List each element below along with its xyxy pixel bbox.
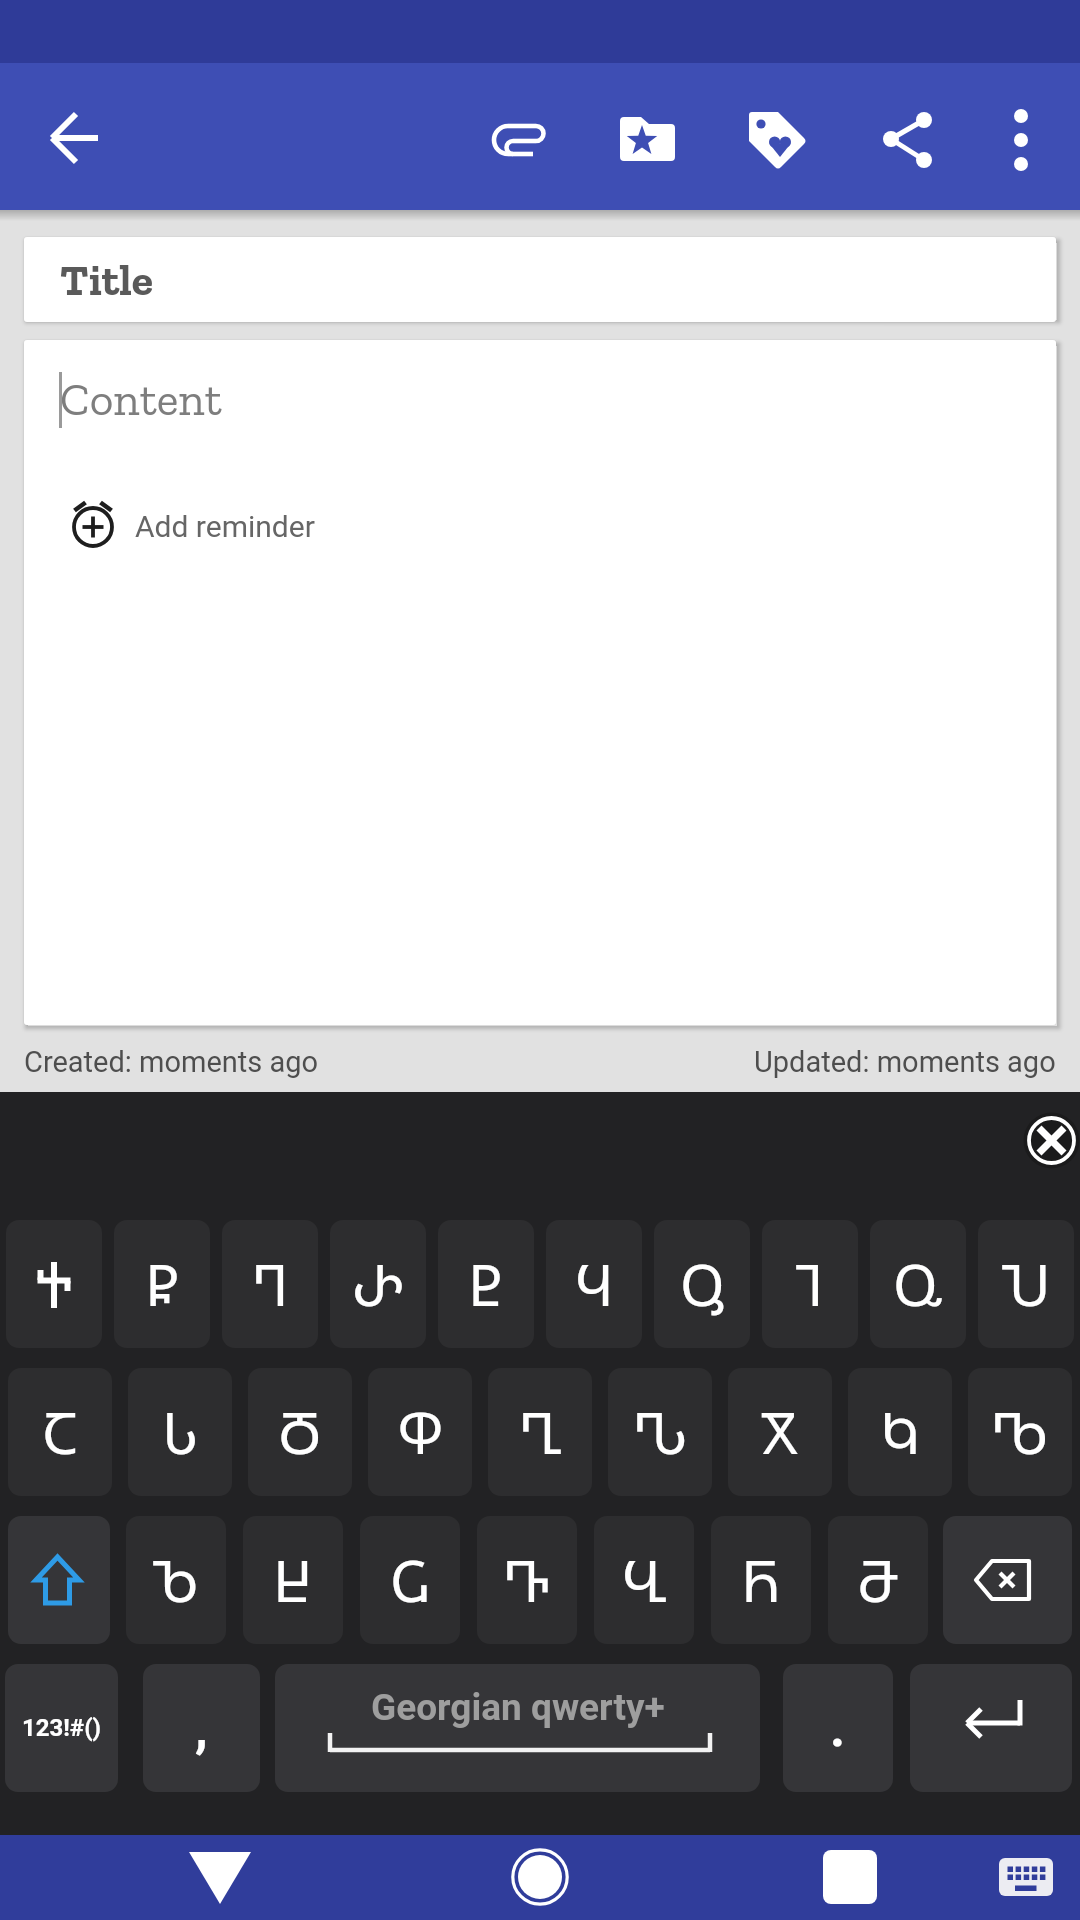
staticText: , (195, 1698, 208, 1759)
staticText: Ⴂ (519, 1393, 562, 1471)
staticText: Ⴁ (622, 1541, 667, 1619)
button[interactable] (480, 1838, 600, 1918)
button[interactable] (987, 106, 1055, 174)
button[interactable] (160, 1838, 280, 1918)
button[interactable]: Ⴃ (248, 1368, 352, 1496)
button[interactable]: Ⴓ (654, 1220, 750, 1348)
staticText: Content (60, 372, 222, 427)
staticText: Ⴚ (390, 1541, 431, 1619)
button[interactable]: Ⴎ (978, 1220, 1074, 1348)
staticText: Ⴒ (468, 1245, 504, 1323)
button[interactable]: Ⴌ (711, 1516, 811, 1644)
button[interactable]: Georgian qwerty+ (275, 1664, 760, 1792)
button[interactable] (745, 106, 813, 174)
button[interactable]: Ⴅ (477, 1516, 577, 1644)
button[interactable]: Ⴈ (762, 1220, 858, 1348)
button[interactable] (910, 1664, 1072, 1792)
button[interactable]: Ⴚ (360, 1516, 460, 1644)
staticText: Ⴐ (352, 1245, 405, 1323)
button[interactable]: Ⴠ (608, 1368, 712, 1496)
button[interactable]: Ⴒ (438, 1220, 534, 1348)
button[interactable] (8, 1516, 110, 1644)
button[interactable]: Content (24, 340, 1056, 1025)
button[interactable]: Ⴁ (594, 1516, 694, 1644)
staticText: Ⴎ (1002, 1245, 1051, 1323)
button[interactable]: Ⴞ (243, 1516, 343, 1644)
button[interactable] (6, 1220, 102, 1348)
button[interactable]: Ⴜ (114, 1220, 210, 1348)
staticText: Georgian qwerty+ (371, 1686, 665, 1729)
button[interactable]: Ⴑ (128, 1368, 232, 1496)
button[interactable] (790, 1838, 910, 1918)
button[interactable]: Ⴗ (546, 1220, 642, 1348)
button[interactable]: . (783, 1664, 893, 1792)
staticText: Ⴞ (273, 1541, 313, 1619)
button[interactable]: Ⴀ (8, 1368, 112, 1496)
staticText: 123!#() (22, 1714, 102, 1742)
staticText: Ⴉ (880, 1393, 921, 1471)
button[interactable]: , (143, 1664, 260, 1792)
button[interactable]: Ⴂ (488, 1368, 592, 1496)
button[interactable]: Add reminder (50, 495, 410, 559)
button[interactable]: Ⴍ (870, 1220, 966, 1348)
button[interactable] (874, 106, 942, 174)
staticText: Updated: moments ago (754, 1045, 1056, 1079)
staticText: Ⴍ (893, 1245, 943, 1323)
staticText: Created: moments ago (24, 1045, 319, 1079)
staticText: Ⴓ (680, 1245, 725, 1323)
button[interactable]: Ⴄ (222, 1220, 318, 1348)
button[interactable]: 123!#() (5, 1664, 118, 1792)
button[interactable] (612, 106, 680, 174)
button[interactable]: Ⴊ (968, 1368, 1072, 1496)
button[interactable] (975, 1838, 1080, 1918)
staticText: Ⴀ (42, 1393, 78, 1471)
staticText: Title (60, 253, 154, 306)
button[interactable] (40, 105, 110, 175)
button[interactable]: Ⴐ (330, 1220, 426, 1348)
staticText: Ⴊ (991, 1393, 1049, 1471)
button[interactable] (943, 1516, 1072, 1644)
staticText: Ⴌ (741, 1541, 782, 1619)
staticText: Ⴟ (761, 1393, 799, 1471)
staticText: Ⴄ (252, 1245, 289, 1323)
staticText: Ⴜ (145, 1245, 180, 1323)
button[interactable] (483, 106, 551, 174)
staticText: Ⴅ (503, 1541, 551, 1619)
staticText: Ⴠ (633, 1393, 688, 1471)
button[interactable]: Ⴟ (728, 1368, 832, 1496)
staticText: . (830, 1698, 846, 1759)
staticText: Ⴆ (153, 1541, 199, 1619)
staticText: Ⴋ (857, 1541, 900, 1619)
staticText: Add reminder (135, 509, 315, 544)
staticText: Ⴃ (278, 1393, 322, 1471)
button[interactable]: Ⴉ (848, 1368, 952, 1496)
staticText: Ⴔ (397, 1393, 444, 1471)
staticText: Ⴗ (575, 1245, 614, 1323)
button[interactable]: Ⴔ (368, 1368, 472, 1496)
button[interactable]: Ⴋ (828, 1516, 928, 1644)
staticText: Ⴈ (796, 1245, 824, 1323)
button[interactable]: Title (24, 237, 1056, 322)
staticText: Ⴑ (162, 1393, 199, 1471)
button[interactable] (1010, 1110, 1080, 1180)
button[interactable]: Ⴆ (126, 1516, 226, 1644)
